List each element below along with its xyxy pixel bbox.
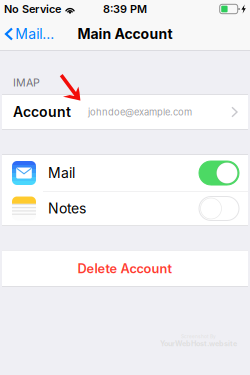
button[interactable]: Mail...: [0, 19, 60, 48]
staticText: Screenshot By: [181, 333, 216, 339]
staticText: Account: [13, 103, 71, 120]
staticText: IMAP: [13, 76, 40, 89]
staticText: johndoe@example.com: [88, 106, 192, 118]
staticText: Mail: [48, 164, 75, 181]
button[interactable]: Mail: [199, 161, 239, 185]
staticText: No Service: [4, 2, 61, 16]
staticText: 8:39 PM: [103, 2, 147, 16]
staticText: Delete Account: [77, 261, 172, 276]
staticText: Notes: [48, 200, 86, 217]
button[interactable]: Account: [2, 95, 248, 129]
button[interactable]: Notes: [199, 196, 239, 220]
staticText: Main Account: [77, 25, 172, 42]
button[interactable]: Delete Account: [2, 250, 248, 286]
staticText: YourWebHost.website: [160, 339, 237, 348]
staticText: Mail...: [15, 25, 54, 42]
